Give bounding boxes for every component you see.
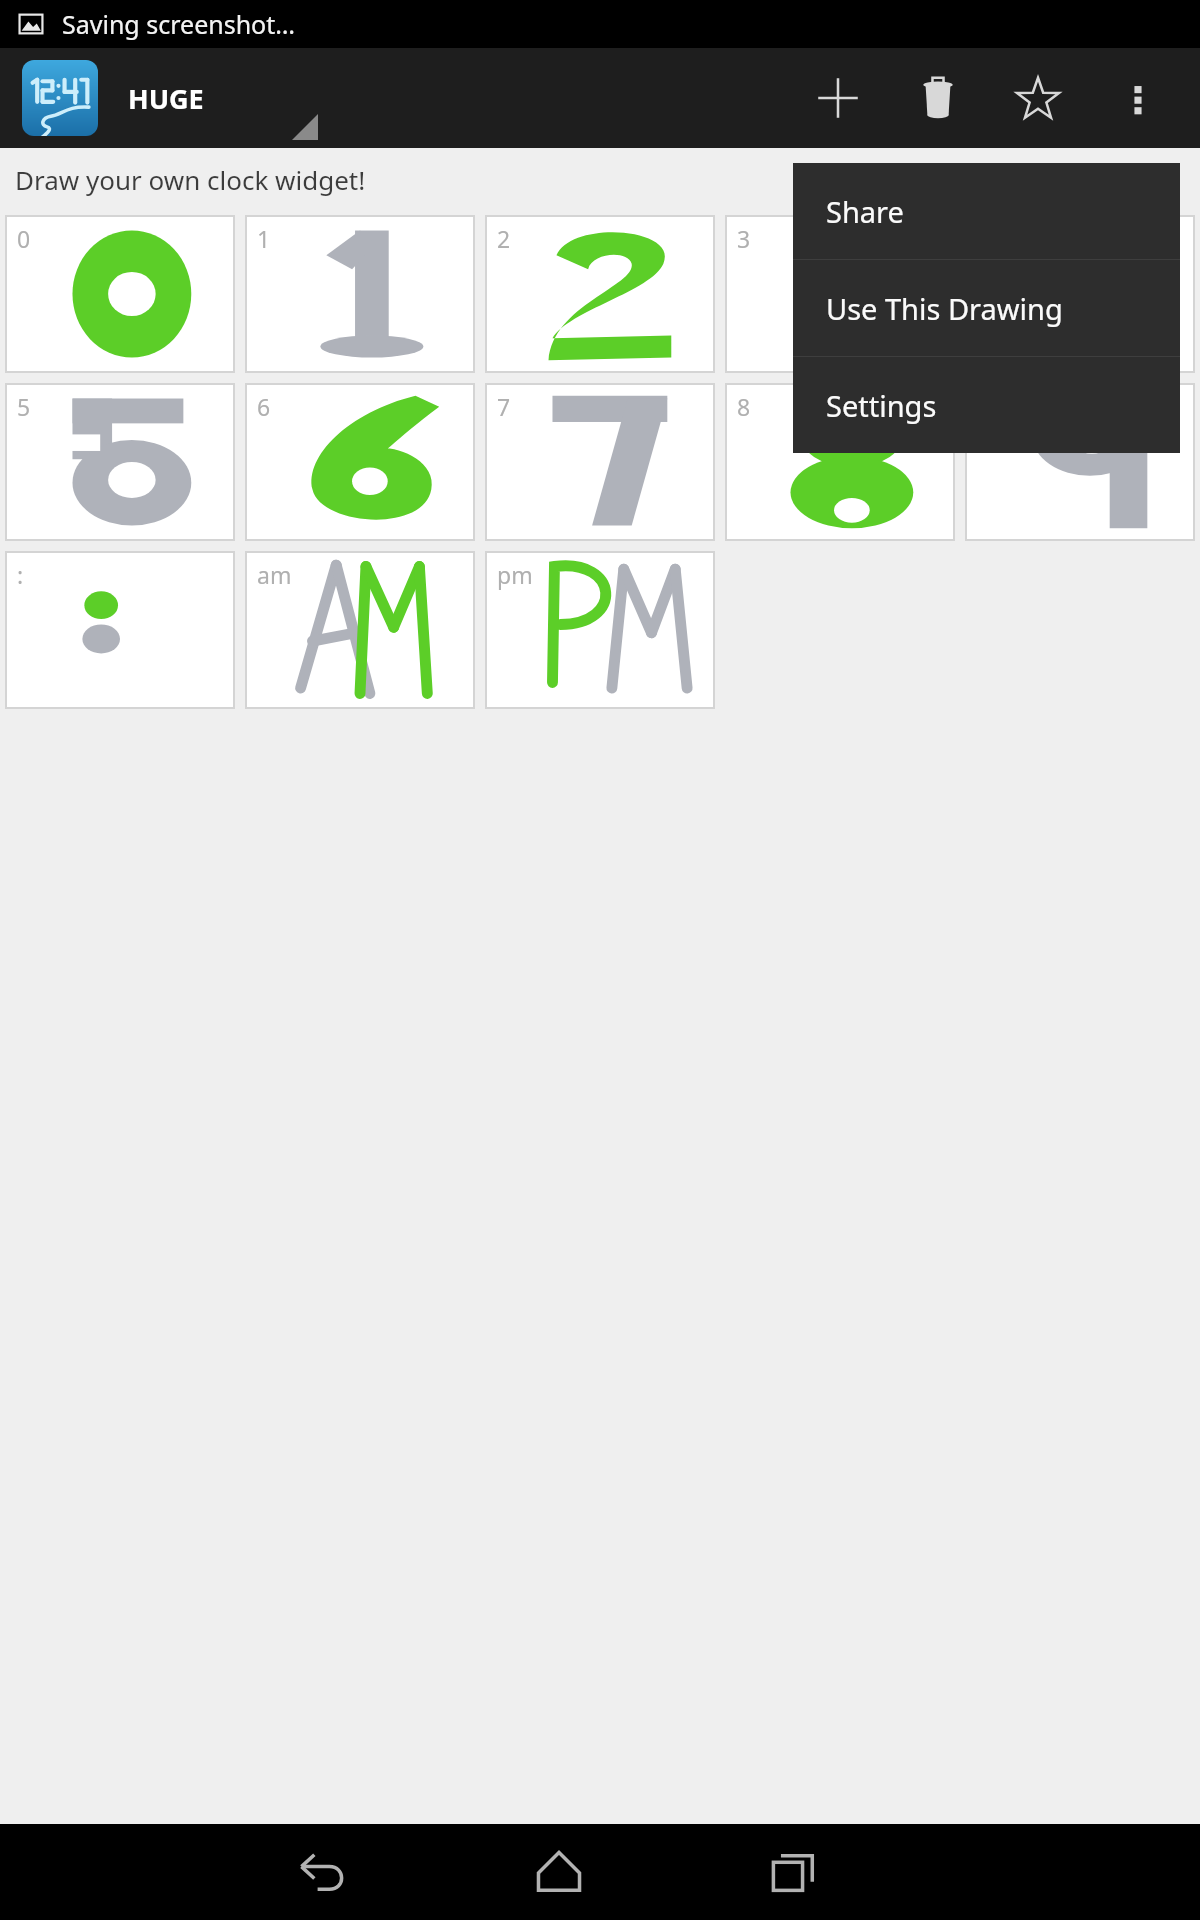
staticText: 2 <box>497 223 511 254</box>
staticText: : <box>17 559 24 590</box>
button[interactable]: Back <box>275 1824 371 1920</box>
button[interactable]: 4 <box>967 217 1193 371</box>
staticText: 1 <box>257 223 271 254</box>
staticText: Use This Drawing <box>826 289 1063 328</box>
staticText: HUGE <box>128 80 204 117</box>
button[interactable]: 1 <box>247 217 473 371</box>
staticText: 0 <box>17 223 31 254</box>
staticText: Saving screenshot… <box>62 7 296 41</box>
staticText: Share <box>826 192 904 231</box>
button[interactable]: Settings <box>793 357 1180 453</box>
button[interactable]: pm <box>487 553 713 707</box>
button[interactable]: Use This Drawing <box>793 260 1180 356</box>
button[interactable]: 6 <box>247 385 473 539</box>
button[interactable]: 8 <box>727 385 953 539</box>
staticText: 3 <box>737 223 751 254</box>
button[interactable]: am <box>247 553 473 707</box>
staticText: 5 <box>17 391 31 422</box>
staticText: pm <box>497 559 533 590</box>
button[interactable]: More options <box>1088 48 1188 148</box>
button[interactable]: 3 <box>727 217 953 371</box>
button[interactable]: Favorite <box>988 48 1088 148</box>
button[interactable]: 9 <box>967 385 1193 539</box>
button[interactable]: Add <box>788 48 888 148</box>
button[interactable]: 7 <box>487 385 713 539</box>
button[interactable]: 2 <box>487 217 713 371</box>
button[interactable]: 5 <box>7 385 233 539</box>
button[interactable]: 0 <box>7 217 233 371</box>
button[interactable]: Share <box>793 163 1180 259</box>
button[interactable]: Home <box>511 1824 607 1920</box>
staticText: am <box>257 559 292 590</box>
staticText: 6 <box>257 391 271 422</box>
staticText: Draw your own clock widget! <box>15 162 366 197</box>
button[interactable]: App icon <box>22 60 98 136</box>
button[interactable]: Recents <box>747 1824 843 1920</box>
staticText: Settings <box>826 386 937 425</box>
button[interactable]: : <box>7 553 233 707</box>
staticText: 7 <box>497 391 511 422</box>
button[interactable]: Delete <box>888 48 988 148</box>
staticText: 8 <box>737 391 751 422</box>
